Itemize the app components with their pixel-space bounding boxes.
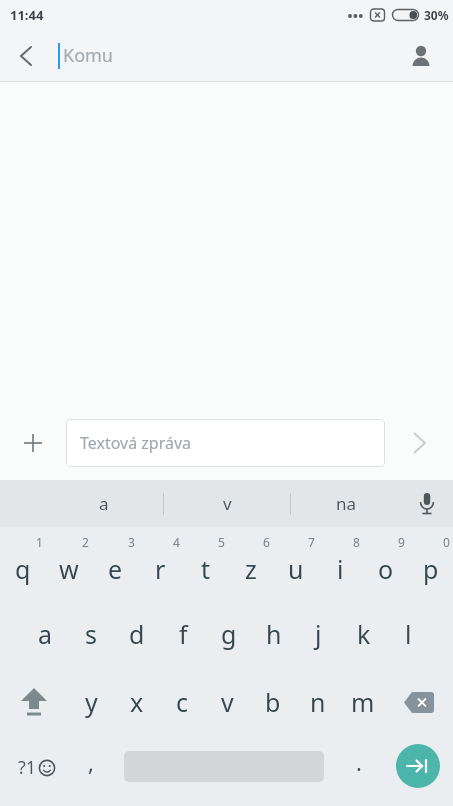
button[interactable]: [401, 30, 440, 81]
staticText: h: [266, 617, 282, 651]
staticText: .: [356, 747, 362, 777]
staticText: 0: [443, 534, 450, 550]
button[interactable]: [385, 668, 453, 736]
button[interactable]: k: [341, 600, 386, 668]
staticText: v: [223, 492, 232, 515]
staticText: 9: [398, 534, 405, 550]
staticText: l: [405, 617, 412, 651]
button[interactable]: j: [296, 600, 341, 668]
staticText: t: [201, 552, 211, 586]
staticText: ,: [88, 747, 94, 777]
button[interactable]: [385, 406, 453, 480]
staticText: g: [221, 617, 237, 651]
staticText: 11:44: [10, 6, 44, 24]
button[interactable]: n: [295, 668, 340, 736]
button[interactable]: w: [46, 527, 92, 600]
button[interactable]: Textová zpráva: [66, 419, 385, 467]
staticText: v: [221, 685, 234, 719]
staticText: i: [337, 552, 344, 586]
button[interactable]: v: [164, 480, 290, 527]
button[interactable]: g: [206, 600, 251, 668]
staticText: b: [265, 685, 281, 719]
button[interactable]: v: [205, 668, 250, 736]
staticText: 4: [173, 534, 180, 550]
button[interactable]: [0, 668, 68, 736]
staticText: z: [245, 552, 257, 586]
staticText: 5: [218, 534, 225, 550]
staticText: a: [38, 617, 53, 651]
staticText: e: [108, 552, 123, 586]
staticText: u: [288, 552, 304, 586]
button[interactable]: b: [250, 668, 295, 736]
staticText: 6: [263, 534, 270, 550]
button[interactable]: [0, 406, 66, 480]
button[interactable]: [0, 30, 52, 81]
button[interactable]: ,: [70, 736, 112, 806]
button[interactable]: p: [408, 527, 453, 600]
staticText: 8: [353, 534, 360, 550]
button[interactable]: a: [22, 600, 68, 668]
staticText: a: [99, 492, 109, 515]
button[interactable]: m: [340, 668, 385, 736]
staticText: na: [336, 492, 357, 515]
button[interactable]: [401, 480, 453, 527]
staticText: ?1: [18, 755, 37, 780]
button[interactable]: o: [363, 527, 408, 600]
staticText: f: [179, 617, 188, 651]
button[interactable]: f: [160, 600, 206, 668]
button[interactable]: l: [386, 600, 431, 668]
button[interactable]: a: [45, 480, 163, 527]
staticText: w: [59, 552, 79, 586]
staticText: m: [351, 685, 375, 719]
staticText: o: [378, 552, 394, 586]
button[interactable]: y: [68, 668, 114, 736]
button[interactable]: h: [251, 600, 296, 668]
button[interactable]: ?1: [0, 736, 70, 806]
staticText: j: [315, 617, 322, 651]
button[interactable]: [112, 736, 336, 806]
staticText: 30%: [424, 7, 449, 23]
button[interactable]: d: [114, 600, 160, 668]
staticText: x: [130, 685, 144, 719]
button[interactable]: [382, 736, 453, 806]
staticText: Komu: [63, 43, 113, 68]
button[interactable]: z: [228, 527, 273, 600]
button[interactable]: c: [160, 668, 205, 736]
staticText: s: [85, 617, 97, 651]
staticText: p: [423, 552, 439, 586]
button[interactable]: .: [336, 736, 382, 806]
staticText: r: [155, 552, 166, 586]
staticText: q: [15, 552, 31, 586]
staticText: Textová zpráva: [80, 432, 192, 454]
staticText: 2: [82, 534, 89, 550]
staticText: y: [85, 685, 98, 719]
button[interactable]: x: [114, 668, 160, 736]
staticText: k: [357, 617, 371, 651]
button[interactable]: r: [138, 527, 183, 600]
button[interactable]: q: [0, 527, 46, 600]
staticText: n: [310, 685, 326, 719]
staticText: 7: [308, 534, 315, 550]
button[interactable]: u: [273, 527, 318, 600]
staticText: 3: [128, 534, 135, 550]
button[interactable]: i: [318, 527, 363, 600]
button[interactable]: na: [291, 480, 401, 527]
staticText: c: [176, 685, 189, 719]
staticText: d: [129, 617, 145, 651]
button[interactable]: t: [183, 527, 228, 600]
button[interactable]: s: [68, 600, 114, 668]
staticText: 1: [36, 534, 43, 550]
button[interactable]: e: [92, 527, 138, 600]
